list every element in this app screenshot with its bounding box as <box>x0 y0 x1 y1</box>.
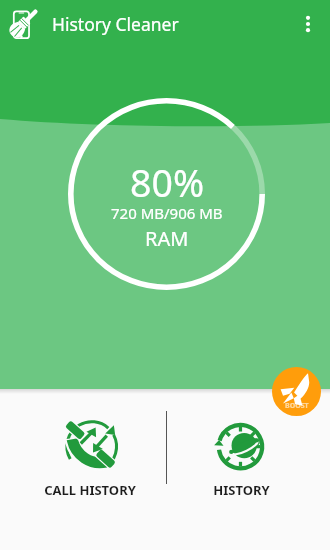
staticText: RAM <box>145 225 189 252</box>
button[interactable]: Boost <box>272 367 321 416</box>
staticText: History Cleaner <box>52 12 179 36</box>
button[interactable]: HISTORY <box>181 420 301 499</box>
staticText: BOOST <box>285 401 309 411</box>
staticText: 720 MB/906 MB <box>111 203 223 223</box>
staticText: CALL HISTORY <box>44 481 136 499</box>
staticText: 80% <box>130 157 205 208</box>
staticText: HISTORY <box>213 481 270 499</box>
button[interactable]: CALL HISTORY <box>30 420 150 499</box>
button[interactable]: More options <box>286 2 330 46</box>
